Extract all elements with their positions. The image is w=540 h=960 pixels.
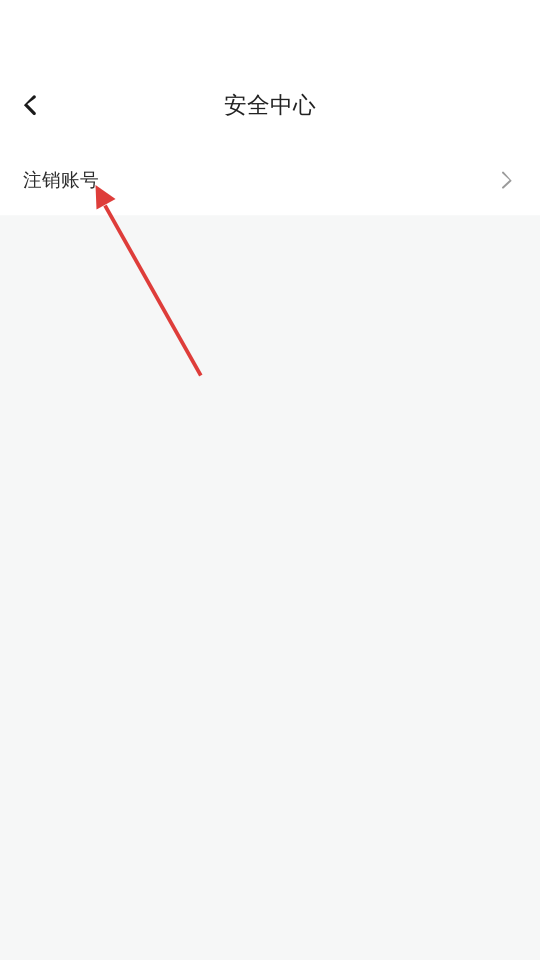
button[interactable]: Back bbox=[4, 79, 56, 131]
staticText: 安全中心 bbox=[224, 91, 316, 119]
staticText: 注销账号 bbox=[23, 169, 99, 191]
button[interactable]: 注销账号 bbox=[0, 135, 540, 215]
